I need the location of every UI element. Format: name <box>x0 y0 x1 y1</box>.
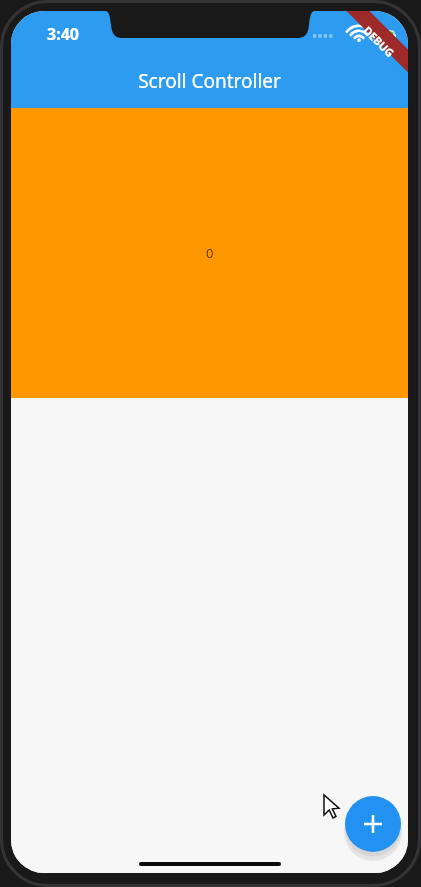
button[interactable]: Add <box>345 796 401 852</box>
staticText: DEBUG <box>360 23 398 60</box>
staticText: 0 <box>206 244 214 262</box>
staticText: 3:40 <box>47 23 79 45</box>
staticText: Scroll Controller <box>11 68 408 94</box>
